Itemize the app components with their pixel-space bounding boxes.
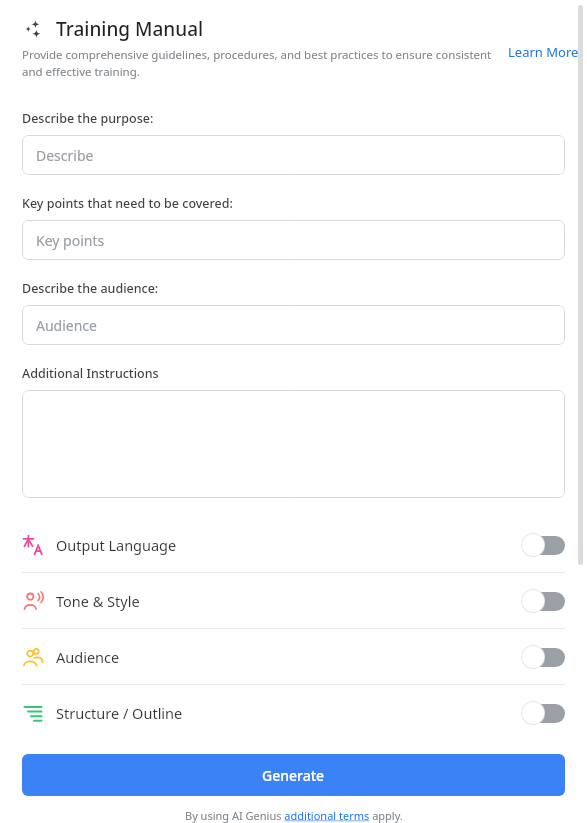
button[interactable] bbox=[22, 390, 565, 498]
button[interactable]: Output Language bbox=[0, 517, 587, 572]
staticText: Key points that need to be covered: bbox=[22, 195, 233, 212]
staticText: Provide comprehensive guidelines, proced… bbox=[22, 47, 509, 79]
staticText: Structure / Outline bbox=[56, 703, 183, 723]
button[interactable]: Describe bbox=[22, 135, 565, 175]
staticText: Generate bbox=[262, 766, 325, 785]
button[interactable]: Structure / Outline bbox=[0, 685, 587, 740]
staticText: Key points bbox=[36, 231, 105, 250]
button[interactable]: Key points bbox=[22, 220, 565, 260]
staticText: Learn More bbox=[508, 43, 579, 61]
button[interactable]: Audience bbox=[22, 305, 565, 345]
staticText: Audience bbox=[56, 647, 120, 667]
staticText: Describe bbox=[36, 146, 94, 165]
staticText: By using AI Genius additional terms appl… bbox=[185, 808, 403, 823]
button[interactable]: Tone & Style bbox=[0, 573, 587, 628]
staticText: Additional Instructions bbox=[22, 365, 159, 382]
staticText: Tone & Style bbox=[56, 591, 140, 611]
staticText: Describe the audience: bbox=[22, 280, 159, 297]
staticText: Output Language bbox=[56, 535, 177, 555]
staticText: Describe the purpose: bbox=[22, 110, 154, 127]
button[interactable]: Audience bbox=[0, 629, 587, 684]
staticText: Audience bbox=[36, 316, 97, 335]
button[interactable]: Learn More bbox=[500, 41, 587, 63]
staticText: Training Manual bbox=[56, 16, 204, 42]
button[interactable]: Generate bbox=[22, 754, 565, 796]
